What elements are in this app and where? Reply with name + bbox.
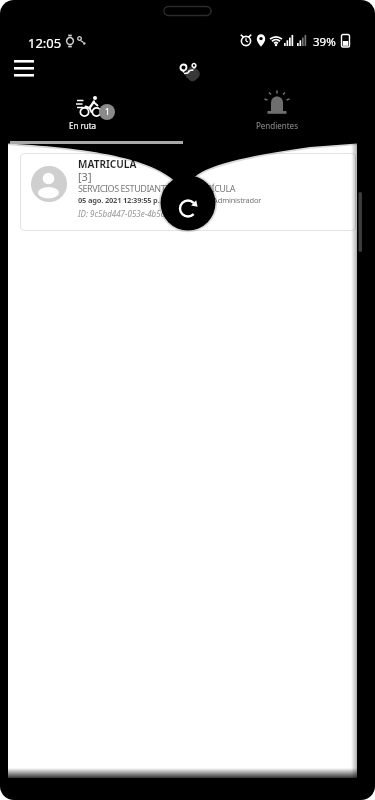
staticText: Pendientes xyxy=(256,120,298,131)
button[interactable] xyxy=(8,54,40,82)
staticText: En ruta xyxy=(69,120,97,131)
button[interactable]: MATRICULA xyxy=(20,153,356,231)
staticText: MATRICULA xyxy=(78,157,137,171)
staticText: [3] xyxy=(78,169,92,184)
staticText: ID: 9c5bd447-053e-4b5d-b463-8f6f xyxy=(78,208,203,219)
button[interactable] xyxy=(160,175,216,231)
button[interactable]: Pendientes xyxy=(183,86,358,138)
button[interactable]: 1 xyxy=(8,86,183,138)
staticText: 1 xyxy=(105,106,110,118)
staticText: 12:05 xyxy=(28,34,62,52)
staticText: 05 ago. 2021 12:39:55 p. m. Creado por: … xyxy=(78,195,262,205)
staticText: 39% xyxy=(313,34,336,50)
staticText: SERVICIOS ESTUDIANTILES | MATRÍCULA xyxy=(78,182,236,194)
